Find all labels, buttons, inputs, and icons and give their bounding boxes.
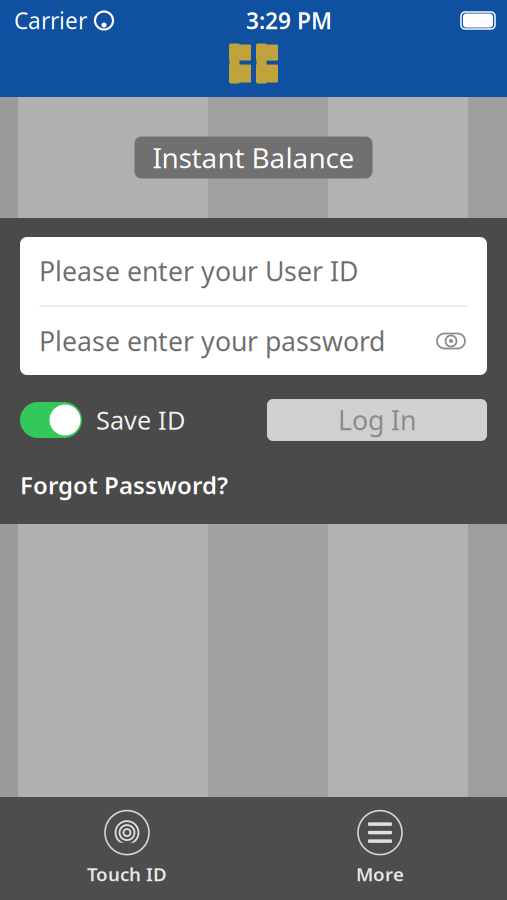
button[interactable]: Touch ID [0, 797, 253, 900]
button[interactable]: Show password [434, 326, 468, 356]
button[interactable]: More [253, 797, 506, 900]
staticText: More [356, 862, 404, 886]
staticText: Forgot Password? [20, 469, 228, 501]
staticText: Instant Balance [152, 139, 354, 176]
staticText: Log In [338, 402, 416, 438]
staticText: 3:29 PM [246, 5, 332, 35]
staticText: Please enter your password [39, 323, 385, 359]
button[interactable]: Instant Balance [134, 136, 372, 178]
button[interactable]: Save ID [20, 402, 185, 438]
staticText: Touch ID [87, 862, 167, 886]
button[interactable]: Log In [267, 399, 487, 441]
button[interactable]: Forgot Password? [20, 469, 228, 501]
staticText: Carrier [14, 5, 87, 35]
staticText: Save ID [96, 403, 185, 437]
staticText: Please enter your User ID [39, 253, 358, 289]
